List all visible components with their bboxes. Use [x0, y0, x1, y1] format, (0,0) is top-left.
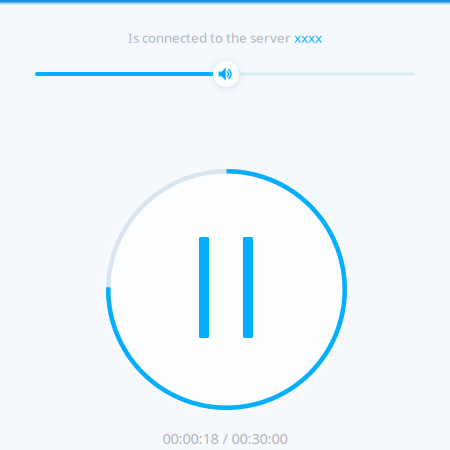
button[interactable]: Pause — [104, 169, 345, 410]
staticText: 00:00:18 / 00:30:00 — [162, 428, 287, 448]
staticText: xxxx — [294, 29, 322, 46]
button[interactable]: Volume — [35, 60, 415, 88]
staticText: Is connected to the server — [128, 29, 294, 46]
